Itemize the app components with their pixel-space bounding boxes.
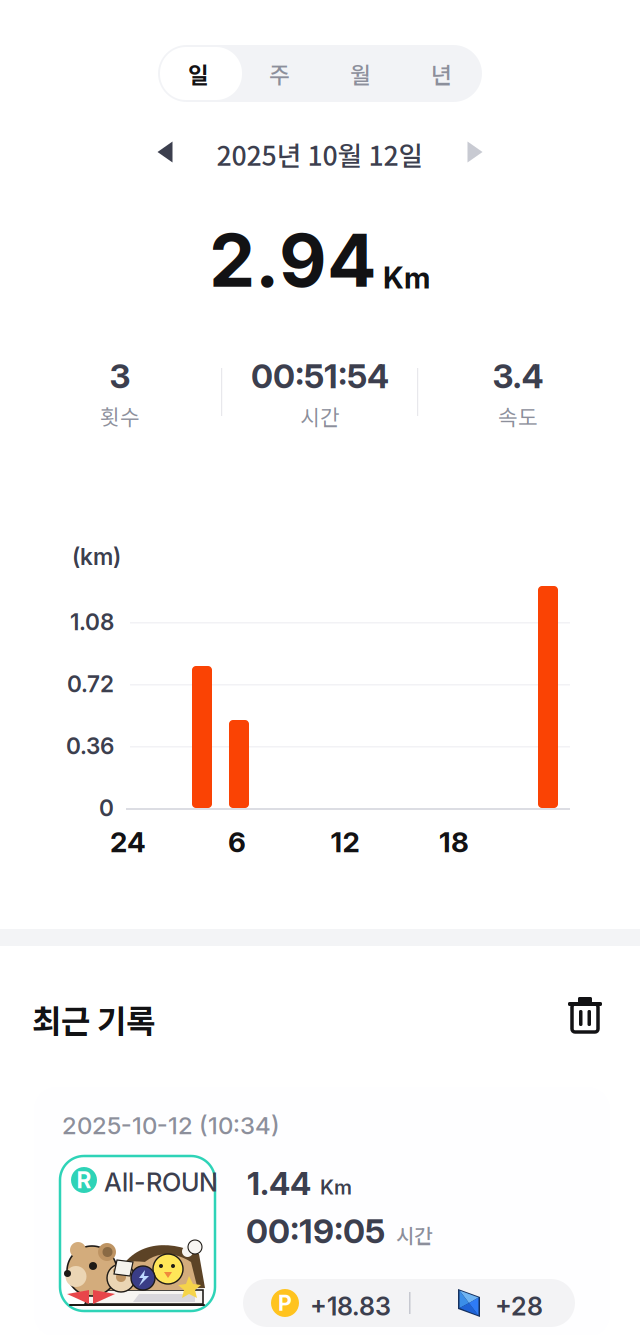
staticText: 2025년 10월 12일 [216, 135, 423, 173]
button[interactable]: 2025-10-12 (10:34) [34, 1087, 610, 1335]
button[interactable]: 년 [401, 45, 482, 102]
staticText: 속도 [498, 401, 538, 431]
staticText: 18 [439, 825, 469, 859]
staticText: 24 [110, 825, 146, 859]
staticText: 6 [228, 825, 246, 859]
staticText: 1.08 [70, 608, 114, 636]
staticText: 0.72 [67, 670, 114, 698]
staticText: (km) [72, 543, 121, 570]
button[interactable]: Next day [447, 124, 503, 180]
button[interactable]: 주 [239, 45, 320, 102]
button[interactable]: Delete records [568, 996, 602, 1034]
button[interactable]: 월 [320, 45, 401, 102]
staticText: 0 [99, 794, 114, 822]
button[interactable]: Previous day [137, 124, 193, 180]
staticText: 월 [350, 57, 371, 90]
staticText: 00:51:54 [251, 356, 389, 396]
staticText: 횟수 [100, 401, 140, 431]
staticText: R [76, 1166, 91, 1194]
staticText: 0.36 [66, 732, 114, 760]
staticText: Km [320, 1175, 352, 1199]
staticText: 3 [109, 356, 130, 396]
staticText: 시간 [396, 1220, 432, 1249]
staticText: +28 [495, 1291, 543, 1322]
staticText: 00:19:05 [246, 1211, 385, 1251]
staticText: 2.94 [209, 216, 377, 304]
staticText: +18.83 [310, 1291, 391, 1322]
staticText: Km [383, 260, 430, 295]
staticText: 최근 기록 [32, 996, 155, 1042]
staticText: All-ROUN [104, 1167, 218, 1198]
staticText: P [278, 1290, 292, 1316]
staticText: 3.4 [492, 356, 543, 396]
staticText: 시간 [300, 401, 340, 431]
staticText: 주 [269, 57, 290, 90]
button[interactable]: 일 [158, 45, 239, 102]
staticText: 1.44 [247, 1164, 311, 1203]
staticText: 12 [330, 825, 359, 859]
staticText: 2025-10-12 (10:34) [62, 1111, 280, 1140]
staticText: 년 [431, 57, 452, 90]
staticText: 일 [188, 57, 209, 90]
